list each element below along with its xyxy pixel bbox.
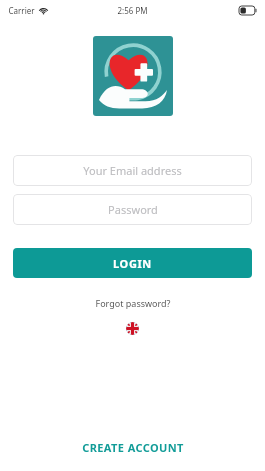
- button[interactable]: Your Email address: [13, 155, 252, 186]
- button[interactable]: Forgot password?: [89, 295, 177, 311]
- staticText: LOGIN: [113, 256, 152, 271]
- staticText: Carrier: [8, 5, 35, 16]
- button[interactable]: LOGIN: [13, 248, 252, 278]
- staticText: 2:56 PM: [117, 5, 148, 16]
- staticText: CREATE ACCOUNT: [82, 440, 184, 455]
- staticText: Your Email address: [83, 163, 182, 178]
- button[interactable]: Select language: English: [126, 322, 139, 335]
- button[interactable]: Password: [13, 194, 252, 225]
- staticText: Forgot password?: [95, 297, 171, 309]
- button[interactable]: CREATE ACCOUNT: [72, 436, 194, 459]
- staticText: Password: [108, 202, 158, 217]
